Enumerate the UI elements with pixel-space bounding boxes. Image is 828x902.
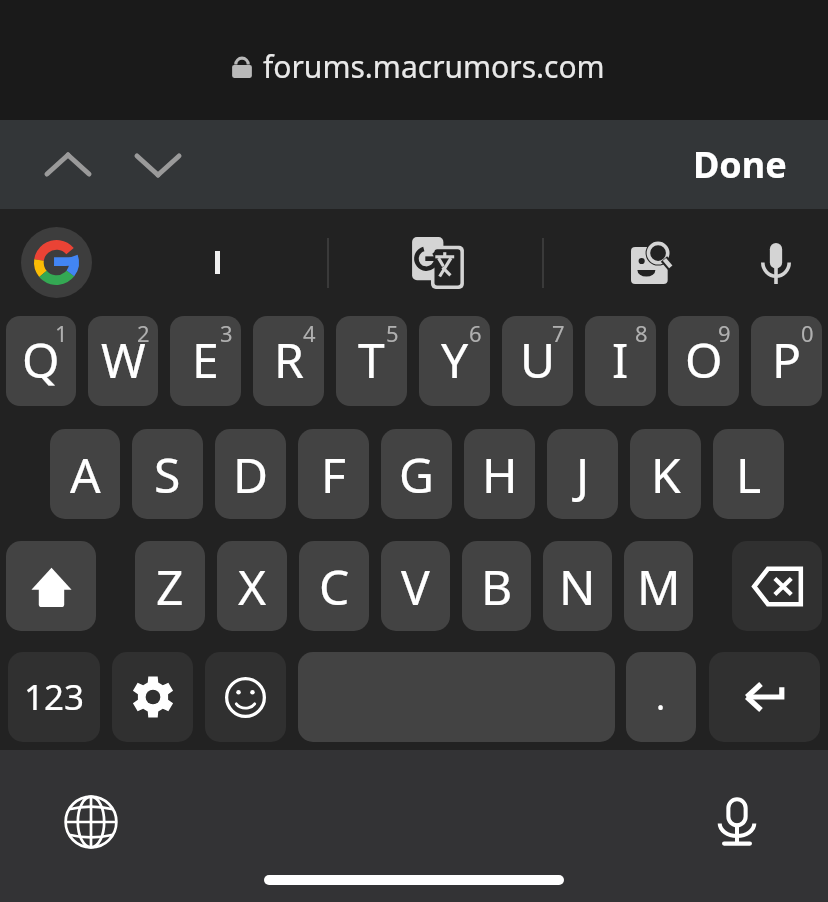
button[interactable]: Google search [21, 227, 92, 298]
staticText: R [274, 327, 304, 392]
staticText: Done [693, 140, 787, 189]
staticText: 0 [801, 318, 814, 348]
button[interactable]: T [336, 316, 407, 406]
button[interactable]: J [547, 429, 618, 519]
button[interactable]: Q [6, 316, 76, 406]
staticText: 3 [220, 318, 233, 348]
button[interactable]: E [170, 316, 241, 406]
button[interactable]: . [626, 652, 696, 742]
staticText: F [321, 442, 346, 507]
button[interactable]: W [88, 316, 158, 406]
button[interactable]: Settings [112, 652, 193, 742]
staticText: S [154, 442, 181, 507]
button[interactable]: G [381, 429, 452, 519]
button[interactable]: Z [135, 541, 205, 631]
button[interactable]: X [217, 541, 287, 631]
staticText: 9 [718, 318, 731, 348]
button[interactable]: N [543, 541, 612, 631]
button[interactable]: Next field [120, 127, 196, 203]
staticText: 123 [24, 673, 85, 721]
staticText: 5 [386, 318, 399, 348]
button[interactable]: H [464, 429, 535, 519]
button[interactable]: Backspace [732, 541, 822, 631]
staticText: T [358, 327, 385, 392]
button[interactable]: B [462, 541, 531, 631]
staticText: M [637, 554, 681, 619]
button[interactable]: Previous field [30, 127, 106, 203]
button[interactable]: Enter [709, 652, 820, 742]
staticText: V [401, 554, 430, 619]
staticText: J [576, 442, 590, 507]
staticText: 6 [469, 318, 482, 348]
button[interactable]: O [668, 316, 739, 406]
staticText: Z [156, 554, 184, 619]
staticText: W [101, 327, 146, 392]
button[interactable]: D [215, 429, 286, 519]
staticText: 8 [635, 318, 648, 348]
staticText: C [319, 554, 350, 619]
staticText: 7 [552, 318, 565, 348]
button[interactable]: Translate [402, 227, 474, 299]
button[interactable]: P [751, 316, 822, 406]
staticText: O [685, 327, 723, 392]
staticText: 2 [137, 318, 150, 348]
button[interactable]: 123 [8, 652, 100, 742]
staticText: 1 [55, 318, 68, 348]
staticText: N [559, 554, 596, 619]
staticText: E [192, 327, 219, 392]
button[interactable]: Switch language [56, 787, 126, 857]
button[interactable]: V [381, 541, 450, 631]
staticText: forums.macrumors.com [263, 46, 605, 87]
staticText: X [238, 554, 267, 619]
button[interactable]: Done [671, 120, 809, 209]
staticText: K [651, 442, 681, 507]
button[interactable]: F [298, 429, 369, 519]
staticText: U [520, 327, 556, 392]
button[interactable]: Voice input [702, 787, 772, 857]
button[interactable]: C [299, 541, 369, 631]
staticText: H [482, 442, 518, 507]
button[interactable]: S [132, 429, 203, 519]
staticText: Q [22, 327, 60, 392]
staticText: I [612, 327, 629, 392]
staticText: 4 [303, 318, 316, 348]
button[interactable]: Emoji [205, 652, 286, 742]
button[interactable]: Voice typing [740, 227, 812, 299]
button[interactable]: K [630, 429, 701, 519]
staticText: P [772, 327, 802, 392]
button[interactable]: Y [419, 316, 490, 406]
button[interactable]: Search stickers [615, 227, 687, 299]
staticText: A [70, 442, 101, 507]
button[interactable]: U [502, 316, 573, 406]
staticText: . [656, 674, 666, 720]
button[interactable]: Shift [6, 541, 96, 631]
button[interactable]: I [585, 316, 656, 406]
button[interactable]: R [253, 316, 324, 406]
button[interactable]: M [624, 541, 693, 631]
staticText: B [481, 554, 513, 619]
button[interactable]: L [713, 429, 784, 519]
staticText: D [233, 442, 269, 507]
staticText: G [399, 442, 434, 507]
staticText: L [736, 442, 762, 507]
button[interactable]: A [50, 429, 120, 519]
staticText: Y [441, 327, 469, 392]
